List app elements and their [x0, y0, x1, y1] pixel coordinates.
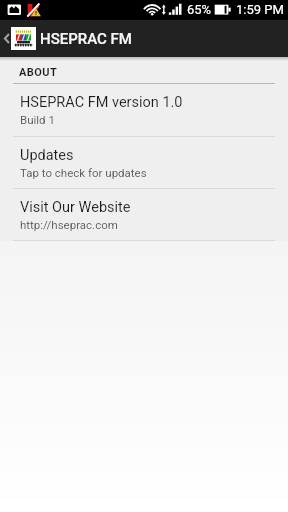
- staticText: Tap to check for updates: [20, 166, 147, 179]
- staticText: http://hseprac.com: [20, 218, 118, 231]
- button[interactable]: Navigate up: [0, 20, 288, 57]
- staticText: HSEPRAC FM: [40, 30, 132, 48]
- staticText: 65%: [187, 2, 212, 17]
- staticText: Visit Our Website: [20, 199, 131, 216]
- button[interactable]: HSEPRAC FM version 1.0: [0, 84, 288, 137]
- staticText: Build 1: [20, 113, 55, 126]
- staticText: ABOUT: [19, 66, 58, 79]
- button[interactable]: Updates: [0, 137, 288, 189]
- staticText: Updates: [20, 147, 74, 164]
- staticText: 1:59 PM: [236, 2, 284, 17]
- button[interactable]: Visit Our Website: [0, 189, 288, 241]
- staticText: HSEPRAC FM version 1.0: [20, 94, 183, 111]
